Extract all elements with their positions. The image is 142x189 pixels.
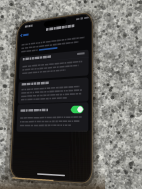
button[interactable]: Phone on a counter showing a battery set…: [0, 0, 142, 189]
